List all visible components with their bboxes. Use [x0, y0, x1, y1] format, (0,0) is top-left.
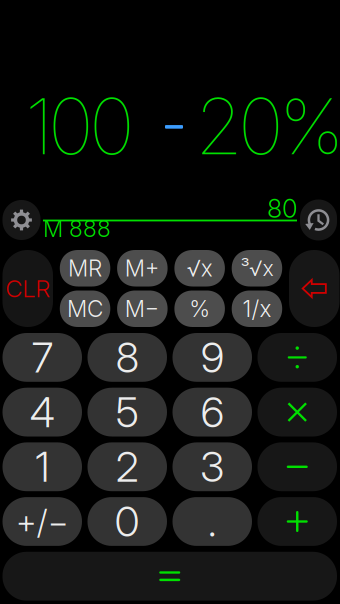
staticText: 2 [116, 442, 139, 492]
staticText: 1 [35, 442, 49, 492]
staticText: 9 [201, 332, 224, 382]
button[interactable]: 8 [87, 333, 167, 382]
button[interactable]: MR [60, 250, 110, 286]
button[interactable]: √x [174, 250, 225, 286]
staticText: 5 [116, 387, 139, 437]
button[interactable]: Multiply [257, 388, 337, 436]
staticText: MC [67, 295, 103, 322]
button[interactable]: 9 [172, 333, 252, 382]
staticText: 1/x [242, 295, 271, 322]
staticText: 6 [201, 387, 224, 437]
button[interactable]: CLR [2, 250, 53, 327]
button[interactable]: 1 [2, 442, 82, 491]
button[interactable]: MC [60, 290, 110, 327]
staticText: M− [125, 295, 160, 322]
staticText: MR [68, 254, 102, 282]
button[interactable]: +/− [2, 497, 82, 546]
button[interactable]: 6 [172, 388, 252, 436]
staticText: 7 [32, 332, 53, 382]
staticText: 3 [200, 442, 224, 492]
button[interactable]: Settings [2, 200, 40, 240]
button[interactable]: Add [257, 497, 337, 546]
button[interactable]: 5 [87, 388, 167, 436]
button[interactable]: % [174, 290, 225, 327]
button[interactable]: 3 [172, 442, 252, 491]
button[interactable]: ³√x [232, 250, 282, 286]
button[interactable]: Divide [257, 333, 337, 382]
button[interactable]: M− [117, 290, 168, 327]
button[interactable]: . [172, 497, 252, 546]
button[interactable]: 4 [2, 388, 82, 436]
button[interactable]: 2 [87, 442, 167, 491]
staticText: CLR [5, 274, 50, 303]
staticText: 8 [116, 332, 139, 382]
staticText: 20% [195, 79, 340, 173]
staticText: 80 [267, 193, 297, 224]
button[interactable]: 0 [87, 497, 167, 546]
staticText: % [189, 295, 210, 322]
staticText: +/− [16, 501, 69, 542]
button[interactable]: Backspace [289, 250, 339, 327]
button[interactable]: M+ [117, 250, 168, 286]
staticText: 4 [30, 387, 55, 437]
staticText: M+ [125, 254, 160, 282]
button[interactable]: 1/x [232, 290, 282, 327]
button[interactable]: Equals [2, 552, 337, 601]
button[interactable]: History [300, 199, 337, 240]
staticText: √x [187, 254, 213, 282]
staticText: 0 [115, 496, 140, 546]
button[interactable]: 7 [2, 333, 82, 382]
staticText: . [208, 496, 217, 546]
staticText: M 888 [43, 215, 111, 242]
staticText: ³√x [240, 255, 273, 281]
button[interactable]: Subtract [257, 442, 337, 491]
staticText: 100 [25, 79, 135, 173]
